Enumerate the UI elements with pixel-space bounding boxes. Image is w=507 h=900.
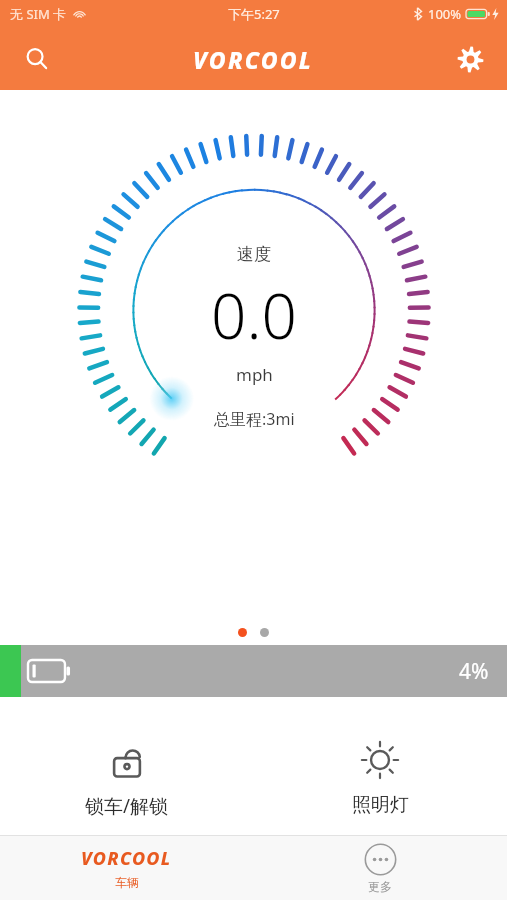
button[interactable]: Settings xyxy=(447,36,493,82)
staticText: mph xyxy=(236,363,273,386)
staticText: 更多 xyxy=(368,879,392,894)
button[interactable]: 更多 xyxy=(253,836,507,900)
staticText: 0.0 xyxy=(211,273,297,357)
staticText: 照明灯 xyxy=(352,793,409,817)
staticText: 总里程:3mi xyxy=(214,408,295,430)
staticText: 100% xyxy=(428,5,462,23)
staticText: 4% xyxy=(459,657,489,686)
staticText: 锁车/解锁 xyxy=(85,793,169,819)
button[interactable]: 锁车/解锁 xyxy=(0,731,253,825)
button[interactable]: 4% xyxy=(0,645,507,697)
button[interactable]: Search xyxy=(14,36,60,82)
button[interactable]: VORCOOL xyxy=(0,836,253,900)
button[interactable]: 照明灯 xyxy=(253,731,507,823)
button[interactable]: Page 2 xyxy=(260,628,269,637)
staticText: VORCOOL xyxy=(193,44,314,75)
button[interactable]: Page 1 xyxy=(238,628,247,637)
staticText: 无 SIM 卡 xyxy=(10,5,67,23)
staticText: 下午5:27 xyxy=(228,5,280,23)
staticText: 速度 xyxy=(237,244,271,265)
staticText: 车辆 xyxy=(115,875,139,890)
staticText: VORCOOL xyxy=(81,846,172,871)
